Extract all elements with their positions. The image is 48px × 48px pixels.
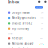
button[interactable]: Invoice #1042 xyxy=(0,21,48,26)
staticText: Earlier xyxy=(8,33,13,35)
staticText: Mon xyxy=(40,37,43,39)
staticText: Inbox xyxy=(8,0,19,4)
button[interactable]: Search xyxy=(38,1,40,3)
button[interactable]: Weekly sync notes xyxy=(0,15,48,21)
button[interactable]: Trip itinerary xyxy=(0,26,48,31)
button[interactable]: Security alert xyxy=(0,46,48,48)
staticText: Invoice #1042 xyxy=(11,22,32,25)
staticText: 2m xyxy=(41,12,43,14)
staticText: Security alert xyxy=(11,47,28,48)
button[interactable]: Design review xyxy=(0,10,48,15)
staticText: Unread xyxy=(36,6,42,8)
staticText: Sun xyxy=(40,43,43,45)
staticText: 14m xyxy=(40,17,43,19)
staticText: Welcome aboard xyxy=(11,42,33,45)
staticText: 3h xyxy=(41,28,43,30)
staticText: Receipt xyxy=(11,36,22,40)
staticText: Trip itinerary xyxy=(11,27,28,30)
button[interactable]: Unread xyxy=(35,6,43,9)
staticText: 1h xyxy=(41,22,43,24)
staticText: Weekly sync notes xyxy=(11,16,35,20)
button[interactable]: Welcome aboard xyxy=(0,41,48,46)
button[interactable]: Receipt xyxy=(0,36,48,41)
staticText: Design review xyxy=(11,11,29,14)
button[interactable]: Compose xyxy=(44,1,46,3)
